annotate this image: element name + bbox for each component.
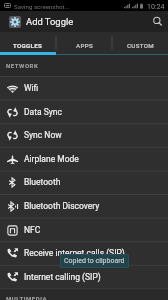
staticText: Receive internet calls (SIP) <box>24 248 125 258</box>
staticText: CUSTOM <box>127 42 154 49</box>
button[interactable]: TOGGLES <box>0 32 56 55</box>
staticText: 10:24 <box>147 3 165 11</box>
staticText: APPS <box>76 42 93 49</box>
staticText: NETWORK <box>6 62 39 69</box>
button[interactable]: Sync Now <box>0 123 168 147</box>
staticText: Bluetooth <box>24 177 61 187</box>
staticText: TOGGLES <box>13 42 43 49</box>
button[interactable]: Search <box>147 11 168 32</box>
staticText: MULTIMEDIA <box>6 295 48 300</box>
staticText: Saving screenshot... <box>14 3 70 10</box>
button[interactable]: APPS <box>56 32 112 55</box>
button[interactable]: CUSTOM <box>112 32 168 55</box>
staticText: Data Sync <box>24 107 62 117</box>
button[interactable]: NFC <box>0 218 168 242</box>
button[interactable]: Receive internet calls (SIP) <box>0 241 168 265</box>
staticText: Bluetooth Discovery <box>24 201 100 211</box>
button[interactable]: Bluetooth <box>0 170 168 194</box>
staticText: Add Toggle <box>26 16 74 27</box>
staticText: NFC <box>24 225 41 235</box>
staticText: Wifi <box>24 83 39 93</box>
button[interactable]: App icon <box>9 16 21 28</box>
button[interactable]: Data Sync <box>0 100 168 124</box>
button[interactable]: Internet calling (SIP) <box>0 265 168 289</box>
staticText: Copied to clipboard <box>64 257 125 265</box>
staticText: Internet calling (SIP) <box>24 272 101 282</box>
button[interactable]: Bluetooth Discovery <box>0 194 168 218</box>
button[interactable]: Wifi <box>0 76 168 100</box>
staticText: Sync Now <box>24 130 62 140</box>
staticText: Airplane Mode <box>24 154 79 164</box>
button[interactable]: Airplane Mode <box>0 147 168 171</box>
